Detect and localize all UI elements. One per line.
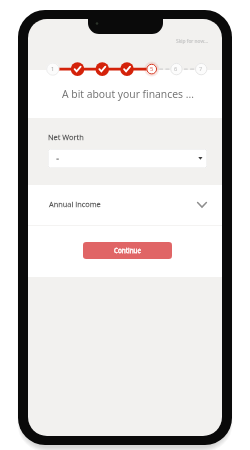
staticText: Net Worth [48, 132, 84, 142]
button[interactable]: Continue [83, 242, 172, 259]
staticText: Continue [114, 246, 142, 255]
staticText: Annual Income [49, 199, 101, 209]
staticText: Skip for now... [176, 38, 209, 45]
staticText: A bit about your finances ... [62, 87, 194, 101]
button[interactable]: Net worth select [48, 149, 207, 168]
button[interactable]: Skip for now... [176, 36, 209, 47]
staticText: 7 [199, 65, 203, 73]
staticText: 5 [150, 65, 154, 73]
staticText: 1 [51, 65, 55, 73]
button[interactable]: Annual Income [28, 185, 222, 226]
staticText: 6 [174, 65, 178, 73]
